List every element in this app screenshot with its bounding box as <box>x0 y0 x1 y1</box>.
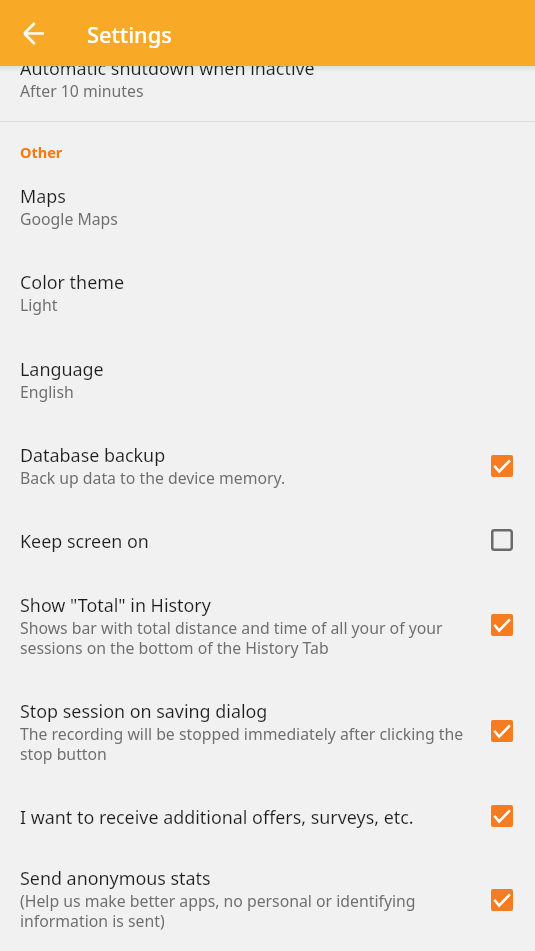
staticText: English <box>20 381 74 403</box>
staticText: Language <box>20 357 104 381</box>
button[interactable]: Color theme <box>0 268 535 355</box>
staticText: Back up data to the device memory. <box>20 467 286 489</box>
button[interactable]: Send anonymous stats <box>0 864 535 950</box>
staticText: Color theme <box>20 270 125 294</box>
staticText: Maps <box>20 184 66 208</box>
staticText: Keep screen on <box>20 529 149 553</box>
staticText: Google Maps <box>20 208 118 230</box>
button[interactable]: Back <box>9 9 57 57</box>
staticText: The recording will be stopped immediatel… <box>20 723 465 764</box>
staticText: Send anonymous stats <box>20 866 211 890</box>
button[interactable]: Show "Total" in History <box>0 591 535 697</box>
button[interactable]: Unchecked <box>485 523 519 557</box>
staticText: After 10 minutes <box>20 80 144 102</box>
staticText: Shows bar with total distance and time o… <box>20 617 465 658</box>
button[interactable]: Maps <box>0 182 535 268</box>
button[interactable]: Stop session on saving dialog <box>0 697 535 803</box>
staticText: Settings <box>87 20 172 50</box>
button[interactable]: Keep screen on <box>0 527 535 591</box>
button[interactable]: Language <box>0 355 535 441</box>
button[interactable]: I want to receive additional offers, sur… <box>0 803 535 864</box>
staticText: Light <box>20 294 58 316</box>
staticText: Database backup <box>20 443 166 467</box>
button[interactable]: Checked <box>485 799 519 833</box>
button[interactable]: Checked <box>485 449 519 483</box>
button[interactable]: Checked <box>485 714 519 748</box>
button[interactable]: Database backup <box>0 441 535 527</box>
staticText: Stop session on saving dialog <box>20 699 268 723</box>
button[interactable]: Checked <box>485 608 519 642</box>
staticText: (Help us make better apps, no personal o… <box>20 890 465 931</box>
staticText: Other <box>20 142 63 162</box>
button[interactable]: Automatic shutdown when inactive <box>0 66 535 121</box>
button[interactable]: Checked <box>485 883 519 917</box>
staticText: I want to receive additional offers, sur… <box>20 805 414 829</box>
staticText: Show "Total" in History <box>20 593 211 617</box>
staticText: Automatic shutdown when inactive <box>20 56 315 80</box>
